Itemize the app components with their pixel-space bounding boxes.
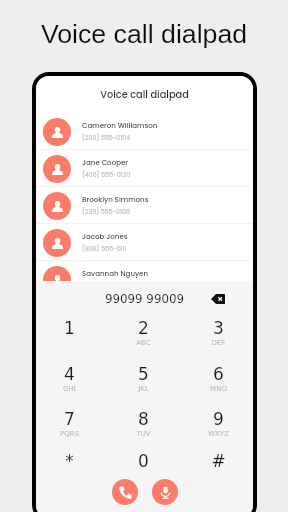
staticText: #	[181, 451, 253, 471]
button[interactable]: 7	[36, 400, 107, 442]
staticText: Voice call dialpad	[0, 19, 288, 49]
button[interactable]: #	[181, 442, 253, 484]
staticText: TUV	[106, 430, 181, 438]
staticText: 6	[181, 364, 253, 384]
staticText: ABC	[106, 339, 181, 347]
button[interactable]: Savannah Nguyen	[36, 261, 253, 298]
button[interactable]: 9	[181, 400, 253, 442]
staticText: 4	[36, 364, 107, 384]
staticText: Brooklyn Simmons	[82, 195, 149, 205]
staticText: MNO	[181, 385, 253, 393]
button[interactable]: 5	[106, 355, 181, 397]
staticText: 1	[36, 318, 107, 338]
button[interactable]: 8	[106, 400, 181, 442]
staticText: PQRS	[36, 430, 107, 438]
staticText: 8	[106, 409, 181, 429]
staticText: (239) 555-0108	[82, 207, 130, 216]
staticText: DEF	[181, 339, 253, 347]
button[interactable]: Voice input	[152, 479, 178, 505]
button[interactable]: Brooklyn Simmons	[36, 187, 253, 224]
staticText: GHI	[36, 385, 107, 393]
button[interactable]: 0	[106, 442, 181, 484]
staticText: (209) 555-0104	[82, 133, 131, 142]
button[interactable]: Jacob Jones	[36, 224, 253, 261]
staticText: 7	[36, 409, 107, 429]
staticText: 9	[181, 409, 253, 429]
button[interactable]: Backspace	[206, 289, 230, 309]
staticText: (406) 555-0120	[82, 170, 131, 179]
button[interactable]: Call	[112, 479, 138, 505]
button[interactable]: Cameron Williamson	[36, 113, 253, 150]
staticText: WXYZ	[181, 430, 253, 438]
staticText: 0	[106, 451, 181, 471]
staticText: Voice call dialpad	[36, 88, 253, 102]
staticText: Jane Cooper	[82, 158, 129, 168]
button[interactable]: Jane Cooper	[36, 150, 253, 187]
button[interactable]: 1	[36, 309, 107, 351]
staticText: 5	[106, 364, 181, 384]
staticText: JKL	[106, 385, 181, 393]
button[interactable]: 2	[106, 309, 181, 351]
staticText: Cameron Williamson	[82, 121, 158, 131]
staticText: 2	[106, 318, 181, 338]
button[interactable]: 4	[36, 355, 107, 397]
staticText: (808) 555-0111	[82, 244, 127, 253]
staticText: Savannah Nguyen	[82, 269, 149, 279]
button[interactable]: 6	[181, 355, 253, 397]
staticText: *	[36, 451, 107, 471]
staticText: 3	[181, 318, 253, 338]
staticText: Jacob Jones	[82, 232, 128, 242]
button[interactable]: 3	[181, 309, 253, 351]
button[interactable]: *	[36, 442, 107, 484]
staticText: 99099 99009	[36, 292, 253, 306]
